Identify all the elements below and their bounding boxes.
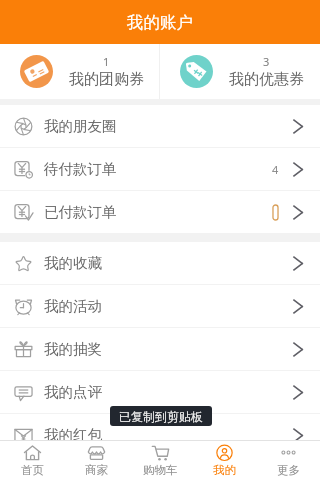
button[interactable]: 1 xyxy=(0,44,159,99)
staticText: 我的点评 xyxy=(44,383,102,401)
button[interactable]: 已付款订单 xyxy=(0,191,320,233)
staticText: 我的团购券 xyxy=(69,70,144,89)
button[interactable]: 我的 xyxy=(192,441,256,480)
button[interactable]: 我的活动 xyxy=(0,285,320,327)
button[interactable]: 我的点评 xyxy=(0,371,320,413)
staticText: 1 xyxy=(103,54,110,69)
staticText: 我的活动 xyxy=(44,297,102,315)
button[interactable]: 我的抽奖 xyxy=(0,328,320,370)
staticText: 3 xyxy=(263,54,270,69)
button[interactable]: 我的红包 xyxy=(0,414,320,456)
button[interactable]: 商家 xyxy=(64,441,128,480)
button[interactable]: 首页 xyxy=(0,441,64,480)
staticText: 我的收藏 xyxy=(44,254,102,272)
staticText: 我的红包 xyxy=(44,426,102,444)
staticText: 我的 xyxy=(213,463,236,477)
button[interactable]: 我的朋友圈 xyxy=(0,105,320,147)
staticText: 4 xyxy=(272,162,279,177)
staticText: 购物车 xyxy=(143,463,178,477)
button[interactable]: 我的收藏 xyxy=(0,242,320,284)
staticText: 更多 xyxy=(277,463,300,477)
button[interactable]: 更多 xyxy=(256,441,320,480)
button[interactable]: 购物车 xyxy=(128,441,192,480)
staticText: 已复制到剪贴板 xyxy=(119,409,203,424)
staticText: 我的优惠券 xyxy=(229,70,304,89)
staticText: 我的账户 xyxy=(127,12,193,33)
staticText: 我的抽奖 xyxy=(44,340,102,358)
staticText: 我的朋友圈 xyxy=(44,117,117,135)
staticText: 首页 xyxy=(21,463,44,477)
staticText: 商家 xyxy=(85,463,108,477)
button[interactable]: 3 xyxy=(160,44,320,99)
staticText: 待付款订单 xyxy=(44,160,117,178)
button[interactable]: 待付款订单 xyxy=(0,148,320,190)
staticText: 已付款订单 xyxy=(44,203,117,221)
